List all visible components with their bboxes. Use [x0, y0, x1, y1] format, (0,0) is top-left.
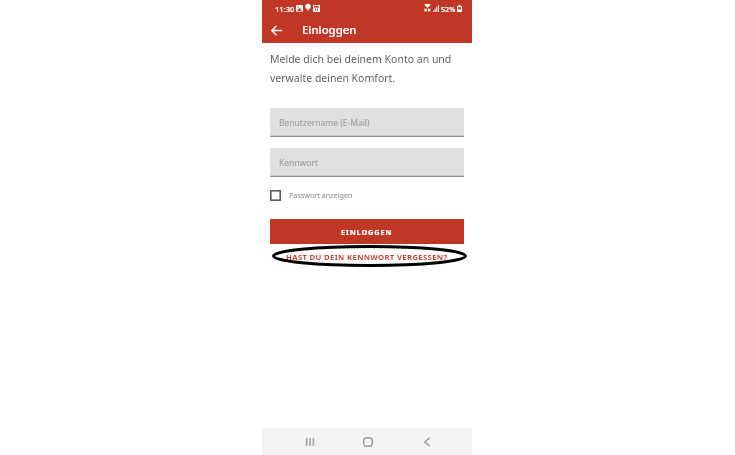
- staticText: Passwort anzeigen: [289, 190, 353, 200]
- staticText: Einloggen: [302, 22, 357, 38]
- staticText: Benutzername (E-Mail): [279, 117, 370, 129]
- button[interactable]: Startseite: [356, 430, 380, 454]
- staticText: HAST DU DEIN KENNWORT VERGESSEN?: [286, 252, 448, 262]
- staticText: 52%: [441, 4, 456, 14]
- button[interactable]: Zurück: [415, 430, 439, 454]
- staticText: EINLOGGEN: [341, 227, 393, 237]
- button[interactable]: Letzte Apps: [298, 430, 322, 454]
- staticText: Melde dich bei deinem Konto an und verwa…: [270, 52, 460, 85]
- button[interactable]: HAST DU DEIN KENNWORT VERGESSEN?: [270, 247, 464, 266]
- button[interactable]: EINLOGGEN: [270, 219, 464, 244]
- button[interactable]: Zurück: [265, 19, 287, 41]
- button[interactable]: Passwort anzeigen: [270, 186, 380, 204]
- button[interactable]: Benutzername (E-Mail): [270, 108, 464, 137]
- staticText: 11:30: [275, 4, 295, 14]
- button[interactable]: Kennwort: [270, 148, 464, 177]
- staticText: Kennwort: [279, 157, 318, 169]
